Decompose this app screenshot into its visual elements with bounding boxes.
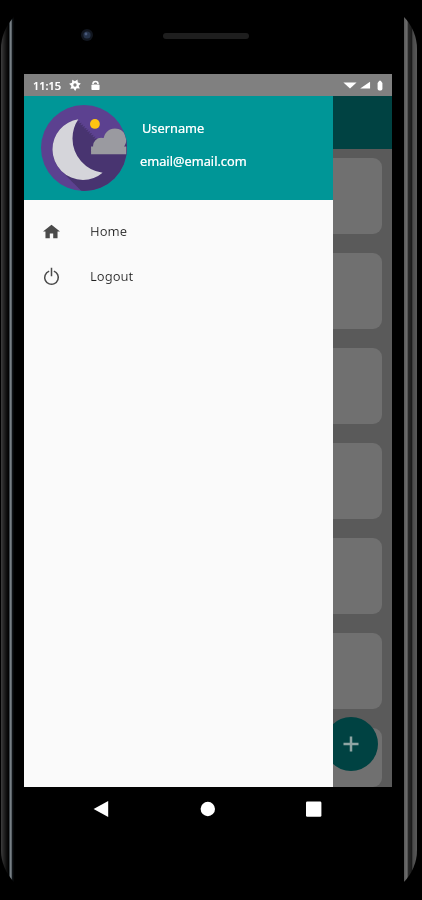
button[interactable]: Home bbox=[24, 208, 333, 253]
staticText: 11:15 bbox=[33, 78, 62, 93]
staticText: Home bbox=[90, 222, 127, 240]
staticText: email@email.com bbox=[140, 152, 247, 169]
button[interactable] bbox=[34, 253, 382, 329]
button[interactable] bbox=[34, 633, 382, 709]
button[interactable] bbox=[34, 443, 382, 519]
button[interactable] bbox=[34, 728, 382, 787]
staticText: Logout bbox=[90, 267, 134, 285]
staticText: Username bbox=[142, 119, 205, 136]
button[interactable]: Add bbox=[324, 717, 378, 771]
button[interactable] bbox=[34, 538, 382, 614]
button[interactable] bbox=[34, 158, 382, 234]
button[interactable] bbox=[34, 348, 382, 424]
button[interactable]: Logout bbox=[24, 253, 333, 298]
